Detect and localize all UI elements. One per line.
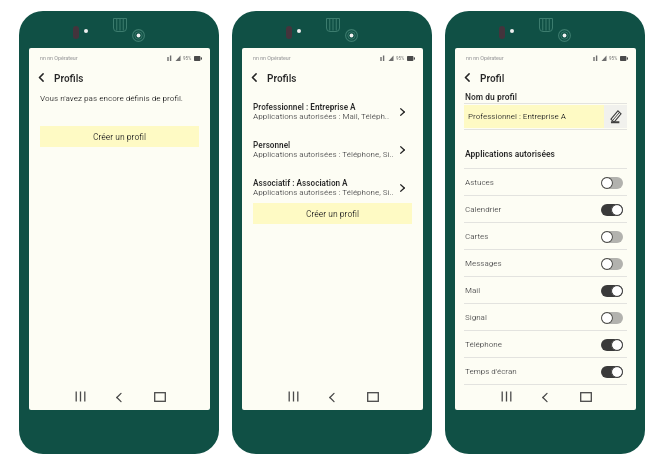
button[interactable]: Accueil [154, 392, 166, 402]
staticText: Cartes [465, 232, 489, 241]
staticText: Profils [267, 73, 297, 85]
staticText: Personnel [253, 140, 291, 150]
button[interactable]: Messages [455, 250, 636, 277]
button[interactable]: Personnel [242, 140, 423, 166]
staticText: Profil [480, 73, 505, 85]
button[interactable]: Associatif : Association A [242, 178, 423, 204]
staticText: Créer un profil [93, 132, 147, 142]
staticText: Applications autorisées [465, 149, 555, 159]
button[interactable]: Accueil [367, 392, 379, 402]
staticText: 95% [609, 56, 618, 61]
button[interactable]: Retour [460, 70, 474, 84]
button[interactable]: Astuces [455, 169, 636, 196]
staticText: Mail [465, 286, 481, 295]
staticText: Astuces [465, 178, 494, 187]
staticText: Applications autorisées : Téléphone, Si.… [253, 150, 395, 159]
button[interactable]: Temps d'écran [455, 358, 636, 385]
staticText: nn nn Opérateur [466, 55, 504, 61]
staticText: 95% [396, 56, 405, 61]
staticText: nn nn Opérateur [40, 55, 78, 61]
button[interactable]: Modifier le nom [604, 105, 627, 128]
button[interactable]: Applications récentes [288, 391, 299, 402]
button[interactable]: Créer un profil [253, 203, 412, 224]
button[interactable]: Signal [455, 304, 636, 331]
staticText: Signal [465, 313, 487, 322]
button[interactable]: Retour [34, 70, 48, 84]
button[interactable]: Applications récentes [75, 391, 86, 402]
button[interactable]: Cartes [455, 223, 636, 250]
staticText: Nom du profil [465, 92, 517, 102]
staticText: Profils [54, 73, 84, 85]
button[interactable]: Retour [540, 393, 549, 402]
staticText: nn nn Opérateur [253, 55, 291, 61]
staticText: Calendrier [465, 205, 502, 214]
staticText: Applications autorisées : Téléphone, Si.… [253, 188, 395, 197]
staticText: Professionnel : Entreprise A [468, 112, 567, 121]
button[interactable]: Applications récentes [501, 391, 512, 402]
staticText: Téléphone [465, 340, 502, 349]
staticText: Vous n'avez pas encore définis de profil… [40, 93, 183, 102]
button[interactable]: Retour [327, 393, 336, 402]
button[interactable]: Créer un profil [40, 126, 199, 147]
staticText: Messages [465, 259, 502, 268]
button[interactable]: Professionnel : Entreprise A [242, 102, 423, 128]
staticText: Créer un profil [306, 209, 360, 219]
button[interactable]: Téléphone [455, 331, 636, 358]
staticText: Applications autorisées : Mail, Téléph.. [253, 112, 395, 121]
staticText: Associatif : Association A [253, 178, 348, 188]
button[interactable]: Accueil [580, 392, 592, 402]
button[interactable]: Mail [455, 277, 636, 304]
button[interactable]: Retour [247, 70, 261, 84]
staticText: 95% [183, 56, 192, 61]
staticText: Temps d'écran [465, 367, 517, 376]
button[interactable]: Calendrier [455, 196, 636, 223]
button[interactable]: Professionnel : Entreprise A [464, 105, 627, 128]
staticText: Professionnel : Entreprise A [253, 102, 356, 112]
button[interactable]: Retour [114, 393, 123, 402]
